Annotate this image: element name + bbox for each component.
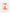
button[interactable]: Roasted Tomato Galette (2, 3, 8, 5)
button[interactable]: Seasonal Picks (2, 5, 8, 8)
button[interactable]: Chef’s Table (2, 8, 8, 10)
